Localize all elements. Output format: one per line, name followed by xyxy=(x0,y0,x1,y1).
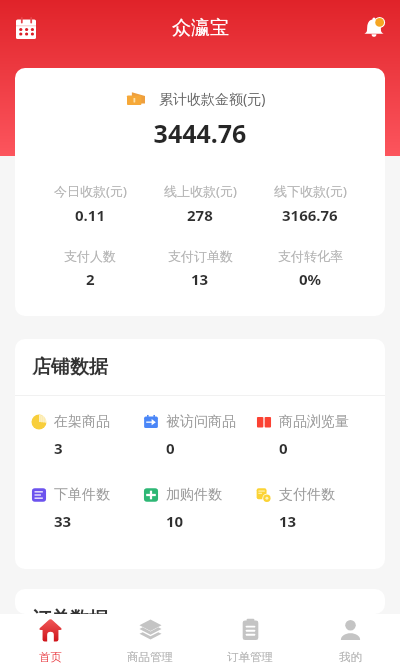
staticText: 278 xyxy=(187,205,213,225)
staticText: 商品浏览量 xyxy=(279,413,349,431)
staticText: 3166.76 xyxy=(282,205,338,225)
staticText: 支付件数 xyxy=(279,486,335,504)
staticText: 加购件数 xyxy=(166,486,222,504)
button[interactable]: Notifications xyxy=(354,8,394,48)
button[interactable]: 我的 xyxy=(300,614,400,667)
staticText: 2 xyxy=(86,269,95,289)
staticText: 33 xyxy=(54,511,72,531)
staticText: 3 xyxy=(54,438,63,458)
staticText: 13 xyxy=(191,269,209,289)
button[interactable]: Calendar xyxy=(6,8,46,48)
staticText: 累计收款金额(元) xyxy=(159,89,266,108)
staticText: 商品管理 xyxy=(127,650,173,664)
staticText: 3444.76 xyxy=(15,116,385,150)
staticText: 线上收款(元) xyxy=(164,182,237,200)
staticText: 在架商品 xyxy=(54,413,110,431)
staticText: 支付转化率 xyxy=(278,248,343,264)
staticText: 首页 xyxy=(39,650,62,664)
button[interactable]: 订单管理 xyxy=(200,614,300,667)
staticText: 0 xyxy=(279,438,288,458)
staticText: 订单管理 xyxy=(227,650,273,664)
staticText: 0 xyxy=(166,438,175,458)
button[interactable]: 商品管理 xyxy=(100,614,200,667)
staticText: 0% xyxy=(299,269,322,289)
staticText: 线下收款(元) xyxy=(274,182,347,200)
staticText: 店铺数据 xyxy=(32,355,108,379)
button[interactable]: 首页 xyxy=(0,614,100,667)
staticText: 下单件数 xyxy=(54,486,110,504)
staticText: 被访问商品 xyxy=(166,413,236,431)
staticText: 13 xyxy=(279,511,297,531)
staticText: 0.11 xyxy=(75,205,105,225)
staticText: 我的 xyxy=(339,650,362,664)
staticText: 10 xyxy=(166,511,184,531)
staticText: 支付人数 xyxy=(64,248,116,264)
staticText: 今日收款(元) xyxy=(54,182,127,200)
staticText: 众瀛宝 xyxy=(172,16,229,40)
staticText: 支付订单数 xyxy=(168,248,233,264)
staticText: 订单数据 xyxy=(32,607,108,614)
